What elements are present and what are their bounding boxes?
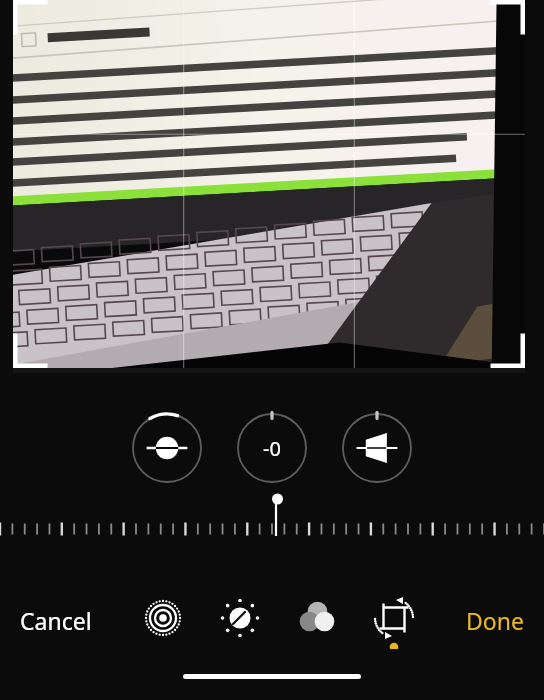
button[interactable]: Auto enhance <box>134 591 192 649</box>
staticText: Cancel <box>20 605 92 636</box>
button[interactable]: Done <box>458 597 532 644</box>
button[interactable]: Straighten <box>130 411 204 485</box>
button[interactable]: Crop and rotate <box>365 591 423 649</box>
button[interactable]: Filters <box>288 591 346 649</box>
staticText: Done <box>466 605 524 636</box>
button[interactable]: Cancel <box>12 597 100 644</box>
button[interactable]: Angle slider <box>0 487 544 559</box>
button[interactable]: Horizontal perspective <box>340 411 414 485</box>
button[interactable]: Adjust <box>211 591 269 649</box>
button[interactable]: Vertical perspective <box>235 411 309 485</box>
staticText: -0 <box>263 435 281 462</box>
